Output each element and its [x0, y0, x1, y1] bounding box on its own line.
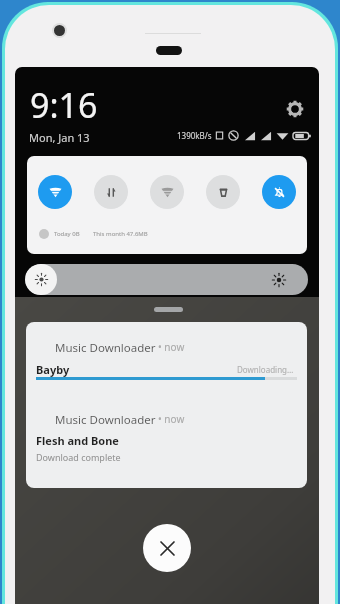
staticText: Mon, Jan 13 — [29, 130, 90, 145]
staticText: Downloading… — [237, 364, 294, 375]
button[interactable]: Wi-Fi — [38, 175, 72, 209]
button[interactable]: Settings — [283, 97, 307, 121]
staticText: • now — [158, 340, 185, 354]
staticText: Bayby — [36, 362, 70, 377]
staticText: Today 0B — [54, 230, 80, 238]
staticText: • now — [158, 412, 185, 426]
button[interactable]: Flashlight — [206, 175, 240, 209]
staticText: Download complete — [36, 451, 121, 463]
button[interactable]: Music Downloader — [26, 322, 307, 390]
staticText: Music Downloader — [55, 340, 156, 356]
staticText: This month 47.6MB — [93, 230, 148, 238]
button[interactable]: Hotspot — [150, 175, 184, 209]
staticText: Music Downloader — [55, 412, 156, 428]
button[interactable]: Close — [143, 524, 191, 572]
button[interactable]: Brightness — [25, 264, 308, 295]
staticText: Flesh and Bone — [36, 433, 119, 448]
staticText: 1390kB/s — [177, 130, 212, 141]
button[interactable]: Mobile data — [94, 175, 128, 209]
staticText: 9:16 — [30, 82, 98, 128]
button[interactable]: Do not disturb — [262, 175, 296, 209]
button[interactable]: Music Downloader — [26, 390, 307, 488]
